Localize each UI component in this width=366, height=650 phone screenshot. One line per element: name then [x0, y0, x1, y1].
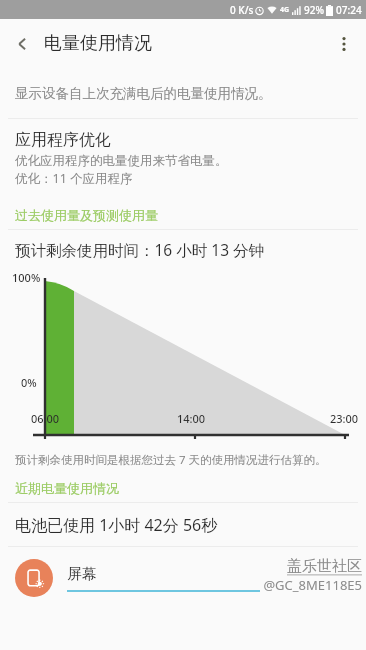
staticText: 100% [12, 270, 41, 285]
staticText: 06:00 [31, 411, 60, 426]
staticText: 14:00 [177, 411, 206, 426]
staticText: 预计剩余使用时间是根据您过去 7 天的使用情况进行估算的。 [15, 452, 327, 468]
staticText: 电量使用情况 [44, 32, 152, 55]
staticText: 预计剩余使用时间：16 小时 13 分钟 [15, 239, 265, 260]
staticText: 07:24 [336, 3, 362, 17]
staticText: 电池已使用 1小时 42分 56秒 [15, 514, 218, 536]
staticText: @GC_8ME118E5 [263, 576, 362, 594]
staticText: 优化应用程序的电量使用来节省电量。 [15, 153, 228, 169]
staticText: 显示设备自上次充满电后的电量使用情况。 [15, 85, 272, 102]
button[interactable]: 屏幕 [0, 547, 366, 609]
staticText: 应用程序优化 [15, 130, 111, 150]
staticText: 0% [21, 375, 37, 390]
staticText: 过去使用量及预测使用量 [15, 207, 158, 223]
button[interactable]: Back [0, 22, 44, 66]
staticText: 4G [280, 5, 290, 15]
staticText: 92% [304, 3, 324, 17]
staticText: 屏幕 [67, 565, 97, 584]
button[interactable]: 应用程序优化 [0, 119, 366, 201]
button[interactable]: More options [322, 22, 366, 66]
staticText: 盖乐世社区 [287, 557, 362, 576]
staticText: 优化：11 个应用程序 [15, 170, 133, 187]
staticText: 近期电量使用情况 [15, 480, 119, 496]
staticText: 0 K/s [230, 3, 254, 17]
staticText: 23:00 [330, 411, 359, 426]
